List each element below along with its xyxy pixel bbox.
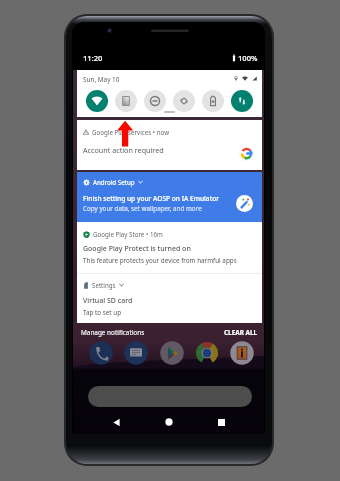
staticText: Virtual SD card (83, 296, 133, 306)
button[interactable]: Mobile data (231, 90, 253, 112)
button[interactable]: Chrome (195, 341, 219, 365)
staticText: Google Play Protect is turned on (83, 244, 191, 254)
button[interactable]: Do not disturb (144, 90, 166, 112)
button[interactable]: Battery saver (202, 90, 224, 112)
button[interactable]: Search (88, 386, 252, 407)
button[interactable]: Auto rotate (173, 90, 195, 112)
staticText: Google Play Store • 16m (93, 230, 163, 238)
button[interactable]: Settings (77, 273, 262, 323)
staticText: Android Setup (93, 178, 135, 186)
button[interactable]: Play Store (160, 341, 184, 365)
staticText: Sun, May 10 (83, 75, 120, 84)
button[interactable]: Messages (124, 341, 148, 365)
button[interactable]: App info (230, 341, 254, 365)
staticText: Account action required (83, 145, 164, 155)
staticText: Tap to set up (83, 308, 122, 317)
button[interactable]: Screen (115, 90, 137, 112)
button[interactable]: Home (160, 413, 178, 431)
button[interactable]: Back (107, 413, 125, 431)
staticText: Finish setting up your AOSP on IA Emulat… (83, 194, 219, 203)
staticText: Copy your data, set wallpaper, and more (83, 204, 202, 213)
staticText: This feature protects your device from h… (83, 256, 237, 265)
button[interactable]: Google Play services • now (77, 120, 262, 170)
button[interactable]: CLEAR ALL (224, 328, 258, 337)
button[interactable]: Google Play Store • 16m (77, 222, 262, 273)
button[interactable]: Manage notifications (81, 328, 145, 337)
staticText: 11:20 (83, 53, 103, 63)
button[interactable]: Recents (212, 413, 230, 431)
staticText: Settings (92, 281, 116, 289)
staticText: 100% (238, 53, 258, 63)
staticText: Google Play services • now (92, 128, 170, 136)
button[interactable]: Phone (89, 341, 113, 365)
button[interactable]: Wi-Fi (86, 90, 108, 112)
button[interactable]: Android Setup (77, 172, 262, 222)
